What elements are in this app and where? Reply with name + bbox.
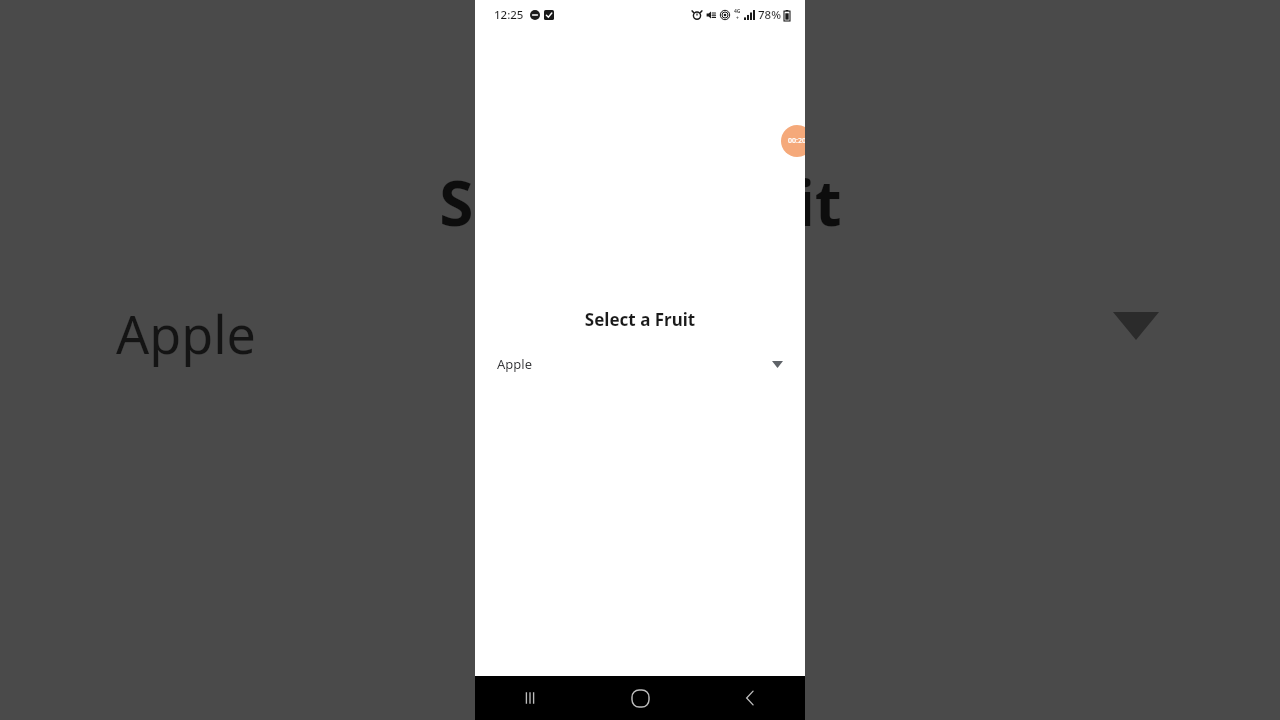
staticText: Apple: [497, 355, 532, 373]
staticText: Apple: [116, 298, 256, 369]
staticText: 78%: [758, 7, 781, 23]
button[interactable]: Home: [585, 676, 695, 720]
staticText: Select a Fruit: [475, 308, 805, 331]
button[interactable]: Back: [695, 676, 805, 720]
staticText: Select a Fruit: [439, 160, 842, 244]
staticText: +: [736, 15, 739, 22]
button[interactable]: Timer: [781, 125, 805, 157]
staticText: 12:25: [494, 7, 524, 23]
staticText: 00:20: [788, 136, 805, 146]
button[interactable]: Recent apps: [475, 676, 585, 720]
button[interactable]: Apple: [497, 347, 783, 381]
staticText: 4G: [734, 8, 741, 15]
